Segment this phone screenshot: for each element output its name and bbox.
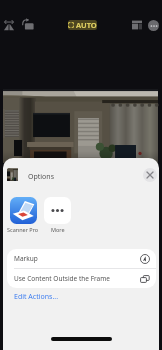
button[interactable]: More <box>44 197 71 233</box>
button[interactable]: Adjust <box>132 20 142 30</box>
staticText: AUTO <box>76 20 97 30</box>
staticText: Scanner Pro <box>7 226 39 233</box>
button[interactable]: Close <box>143 168 157 182</box>
button[interactable]: Edit Actions... <box>14 292 59 302</box>
button[interactable]: Markup <box>7 249 156 268</box>
button[interactable]: Perspective correction <box>2 17 16 31</box>
button[interactable]: Scanner Pro <box>7 197 39 233</box>
button[interactable]: Auto enhance <box>68 20 97 30</box>
button[interactable]: More options <box>148 20 159 31</box>
button[interactable]: Use Content Outside the Frame <box>7 269 156 288</box>
button[interactable]: Rotate <box>21 17 35 31</box>
staticText: Options <box>28 172 55 182</box>
staticText: Markup <box>14 254 38 263</box>
staticText: Use Content Outside the Frame <box>14 274 110 283</box>
staticText: More <box>51 226 65 233</box>
